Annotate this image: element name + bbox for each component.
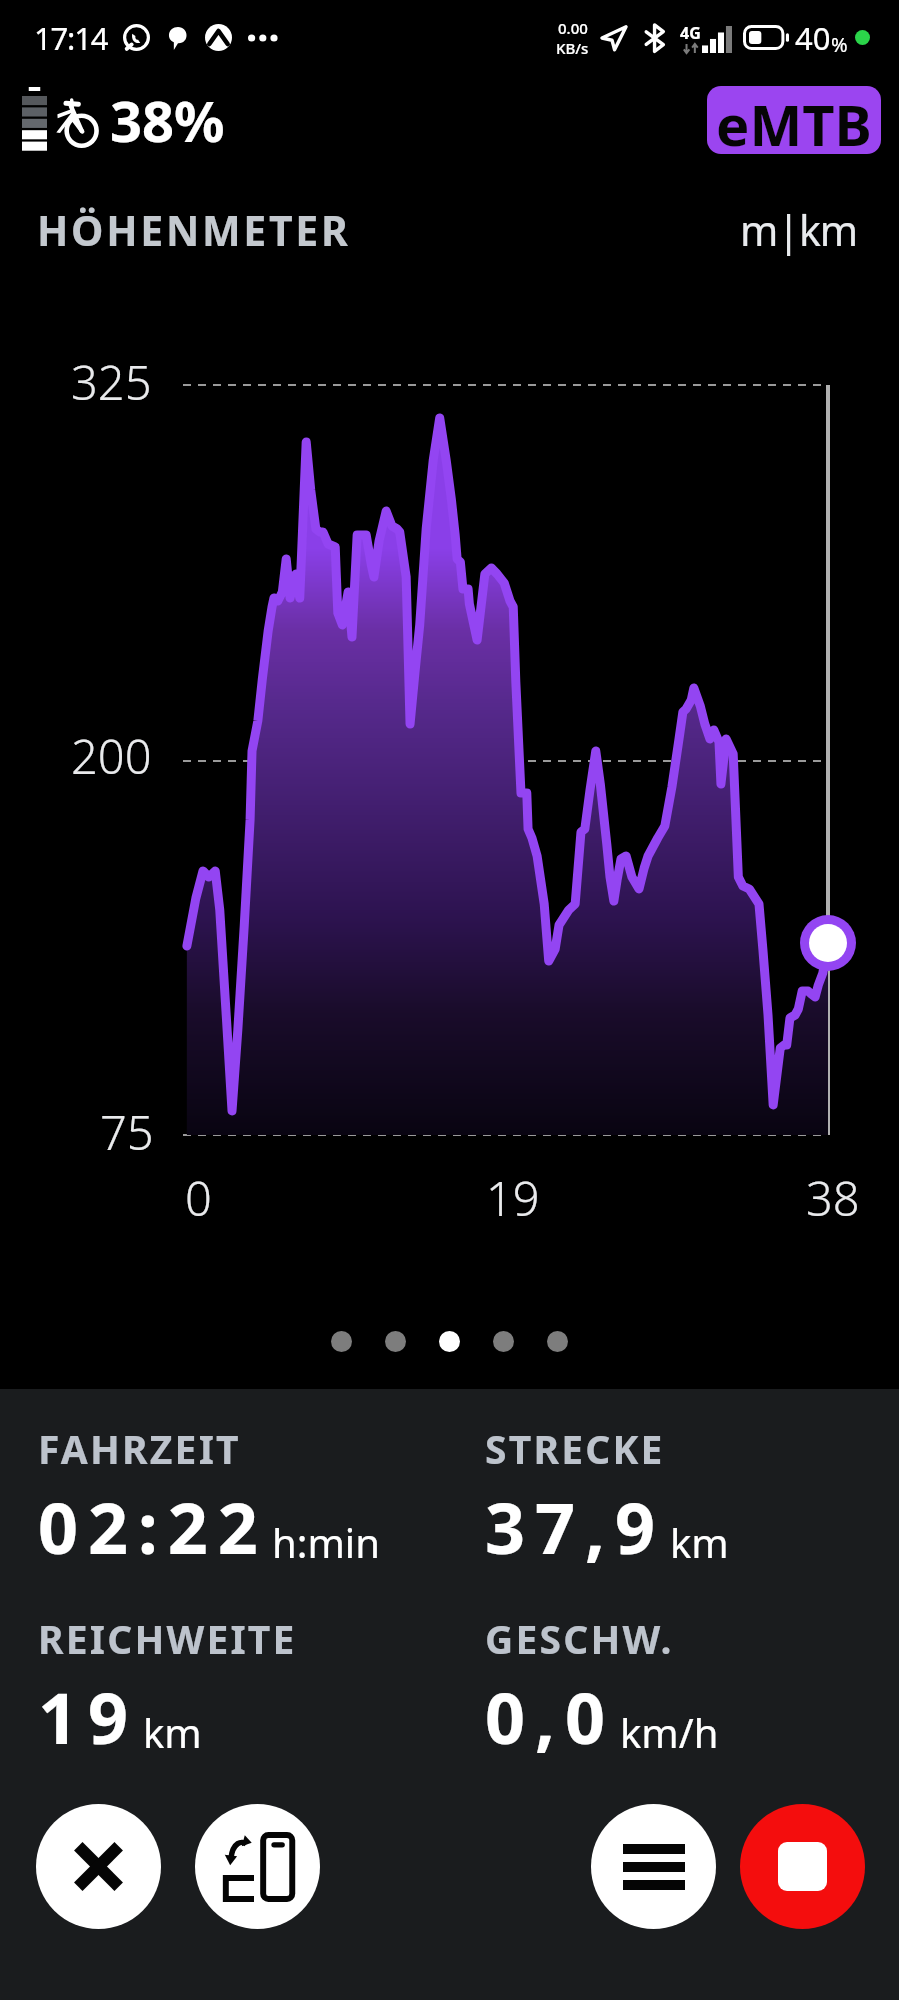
button[interactable] — [547, 1331, 568, 1352]
staticText: 38 — [806, 1166, 860, 1230]
staticText: eMTB — [716, 86, 872, 154]
staticText: REICHWEITE — [38, 1612, 297, 1665]
staticText: h:min — [272, 1515, 380, 1569]
staticText: 02:22 — [38, 1479, 268, 1574]
button[interactable] — [493, 1331, 514, 1352]
button[interactable] — [385, 1331, 406, 1352]
staticText: 37,9 — [485, 1479, 666, 1574]
button[interactable]: Stop — [740, 1804, 865, 1929]
staticText: 17:14 — [34, 17, 108, 59]
button[interactable] — [439, 1331, 460, 1352]
staticText: 19 — [486, 1166, 540, 1230]
staticText: m|km — [740, 202, 858, 258]
staticText: 38% — [110, 82, 225, 158]
staticText: KB/s — [556, 38, 589, 58]
button[interactable]: eMTB — [707, 86, 881, 154]
staticText: 0 — [185, 1166, 212, 1230]
button[interactable]: Menu — [591, 1804, 716, 1929]
staticText: 75 — [100, 1100, 154, 1164]
staticText: 200 — [71, 724, 152, 788]
button[interactable] — [331, 1331, 352, 1352]
staticText: 0,0 — [485, 1669, 616, 1764]
staticText: 0.00 — [558, 18, 588, 38]
staticText: km — [143, 1705, 202, 1759]
staticText: km/h — [620, 1705, 719, 1759]
staticText: 4G — [680, 22, 701, 44]
button[interactable]: Rotate screen — [195, 1804, 320, 1929]
staticText: % — [831, 31, 848, 58]
staticText: GESCHW. — [485, 1612, 674, 1665]
staticText: km — [670, 1515, 729, 1569]
staticText: HÖHENMETER — [37, 202, 351, 258]
staticText: STRECKE — [485, 1422, 665, 1475]
staticText: 325 — [71, 350, 152, 414]
staticText: 19 — [38, 1669, 139, 1764]
staticText: 40 — [795, 17, 831, 59]
button[interactable]: Close — [36, 1804, 161, 1929]
staticText: FAHRZEIT — [38, 1422, 241, 1475]
